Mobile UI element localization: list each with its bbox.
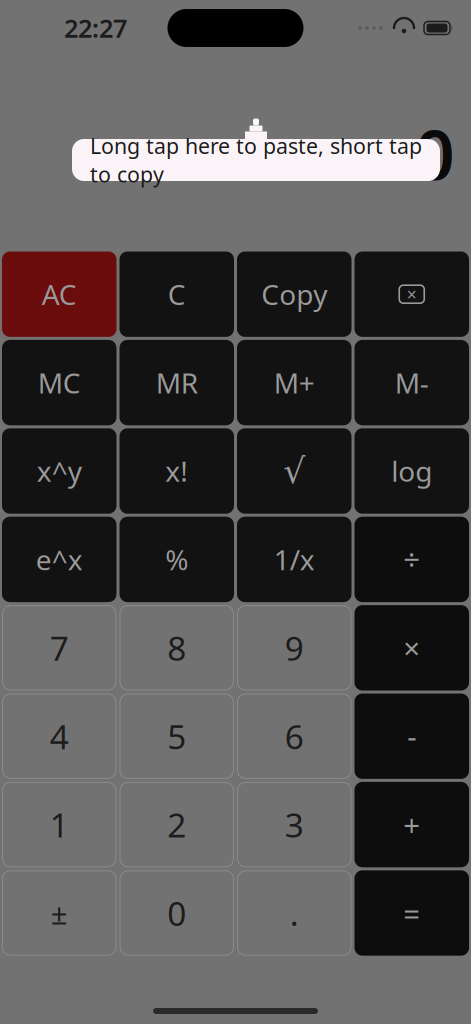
button[interactable]: 0 — [120, 871, 233, 955]
button[interactable]: e^x — [2, 517, 116, 602]
button[interactable]: - — [354, 693, 469, 779]
button[interactable]: 5 — [120, 694, 233, 778]
staticText: × — [403, 628, 420, 667]
staticText: 22:27 — [64, 11, 127, 45]
staticText: ± — [51, 893, 68, 932]
staticText: M- — [395, 364, 429, 401]
button[interactable]: x^y — [2, 428, 116, 514]
staticText: C — [168, 276, 186, 313]
staticText: 1/x — [274, 541, 315, 578]
staticText: × — [407, 283, 417, 306]
staticText: % — [165, 541, 188, 578]
button[interactable]: × — [354, 605, 469, 690]
staticText: 3 — [285, 802, 304, 847]
button[interactable]: = — [354, 870, 469, 956]
staticText: 4 — [50, 714, 69, 758]
staticText: 0 — [415, 107, 455, 199]
button[interactable]: x! — [119, 428, 234, 514]
staticText: Long tap here to paste, short tap to cop… — [90, 132, 422, 188]
staticText: = — [403, 893, 420, 932]
staticText: MR — [156, 364, 198, 401]
staticText: M+ — [274, 364, 315, 401]
staticText: AC — [42, 276, 77, 313]
button[interactable]: 4 — [2, 694, 116, 778]
staticText: ÷ — [403, 540, 420, 579]
button[interactable]: 1 — [2, 782, 116, 867]
button[interactable]: M- — [354, 340, 469, 425]
button[interactable]: log — [354, 428, 469, 514]
button[interactable]: MR — [119, 340, 234, 425]
staticText: √ — [283, 451, 305, 491]
button[interactable]: 1/x — [237, 517, 351, 602]
staticText: log — [391, 452, 432, 490]
staticText: 5 — [167, 714, 186, 758]
button[interactable]: M+ — [237, 340, 351, 425]
staticText: 7 — [50, 626, 69, 670]
button[interactable]: AC — [2, 251, 116, 337]
staticText: x^y — [37, 452, 82, 490]
button[interactable]: Delete — [354, 251, 469, 337]
button[interactable]: 2 — [120, 782, 233, 867]
button[interactable]: 8 — [120, 606, 233, 690]
staticText: . — [290, 891, 299, 935]
button[interactable]: 7 — [2, 606, 116, 690]
button[interactable]: . — [237, 871, 351, 955]
button[interactable]: 3 — [237, 782, 351, 867]
staticText: Copy — [261, 276, 327, 313]
staticText: 0 — [167, 891, 186, 935]
button[interactable]: ÷ — [354, 517, 469, 602]
button[interactable]: + — [354, 782, 469, 867]
button[interactable]: MC — [2, 340, 116, 425]
staticText: 2 — [167, 802, 186, 847]
button[interactable]: Square root — [237, 428, 351, 514]
staticText: MC — [38, 364, 81, 401]
button[interactable]: % — [119, 517, 234, 602]
staticText: 6 — [285, 714, 304, 758]
staticText: - — [407, 717, 416, 756]
staticText: e^x — [36, 541, 83, 578]
staticText: 9 — [285, 626, 304, 670]
button[interactable]: C — [119, 251, 234, 337]
button[interactable]: Copy — [237, 251, 351, 337]
staticText: + — [403, 805, 420, 844]
button[interactable]: 9 — [237, 606, 351, 690]
button[interactable]: 6 — [237, 694, 351, 778]
button[interactable]: ± — [2, 871, 116, 955]
staticText: 1 — [50, 802, 69, 847]
staticText: x! — [165, 452, 188, 490]
staticText: 8 — [167, 626, 186, 670]
